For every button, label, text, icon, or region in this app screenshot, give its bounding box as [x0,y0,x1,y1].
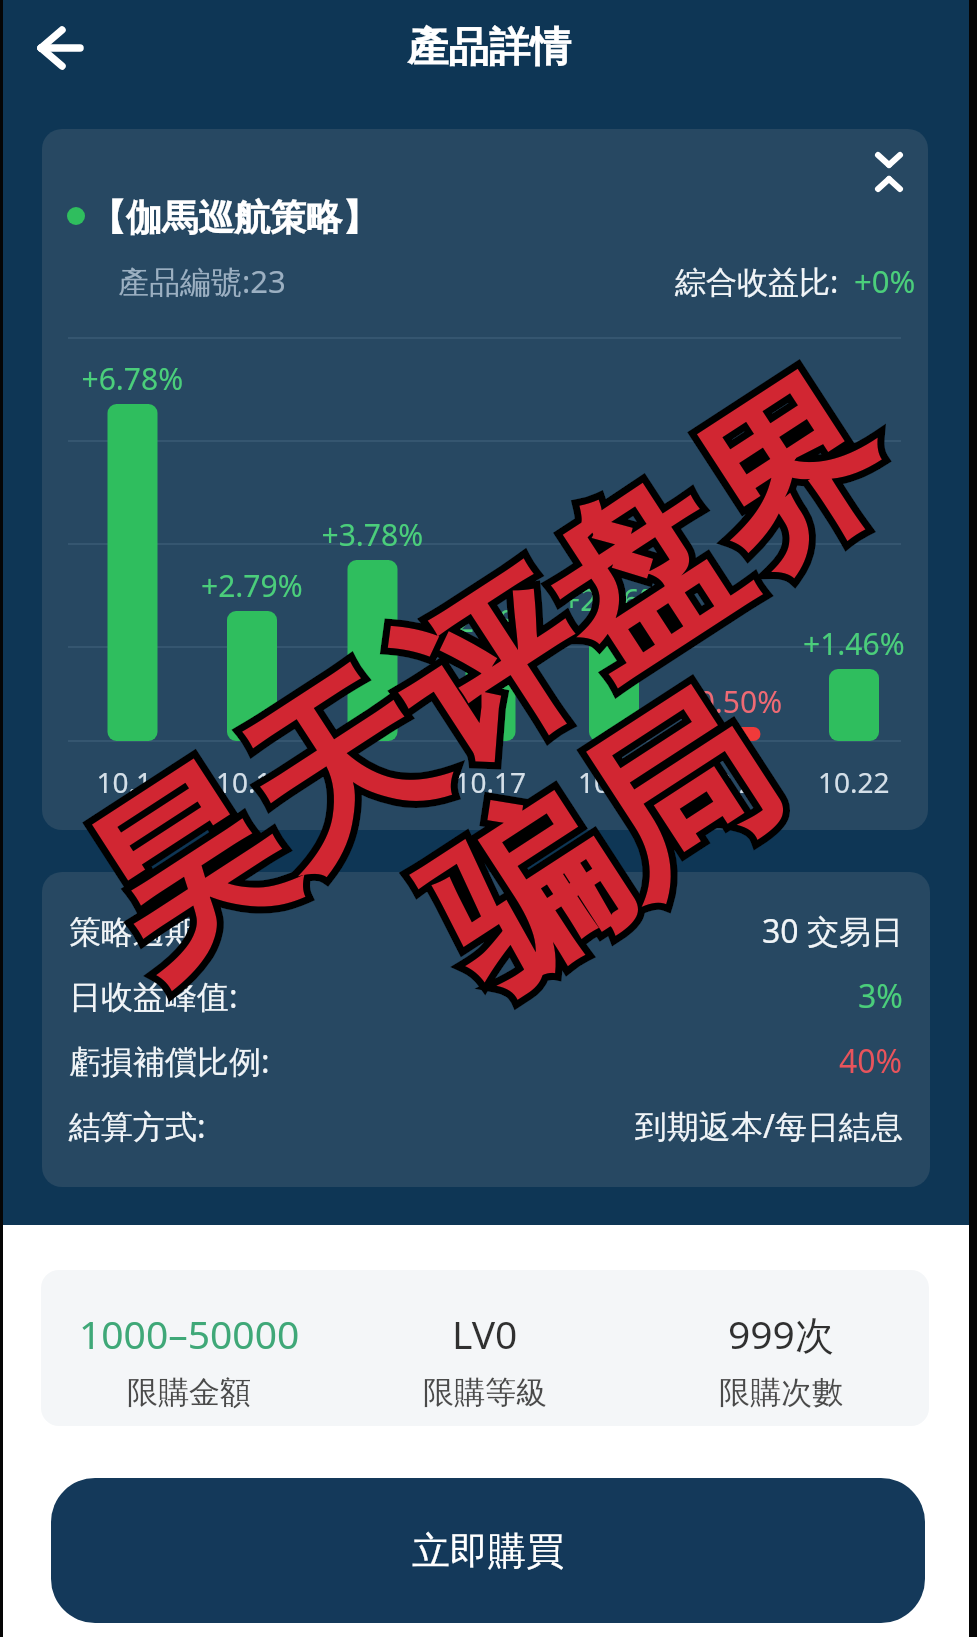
staticText: 產品詳情 [407,22,571,74]
staticText: 限購等級 [423,1373,547,1412]
staticText: LV0 [452,1307,518,1360]
staticText: 策略週期: [69,909,206,953]
staticText: 1000–50000 [79,1307,300,1360]
staticText: 限購次數 [719,1373,843,1412]
staticText: 限購金額 [127,1373,251,1412]
staticText: 產品編號:23 [118,260,286,302]
staticText: 結算方式: [69,1104,206,1148]
staticText: 30 交易日 [762,909,903,953]
staticText: 立即購買 [412,1527,564,1575]
staticText: 40% [839,1039,903,1083]
staticText: 日收益峰值: [69,974,238,1018]
button[interactable]: Collapse [853,131,915,193]
staticText: 綜合收益比: [675,260,839,302]
staticText: +0% [854,260,916,302]
staticText: 999次 [728,1307,834,1360]
button[interactable]: 立即購買 [51,1478,925,1623]
staticText: 【伽馬巡航策略】 [90,195,378,240]
staticText: 3% [858,974,903,1018]
staticText: 到期返本/每日結息 [635,1104,903,1148]
staticText: 虧損補償比例: [69,1039,270,1083]
button[interactable]: Back [10,12,86,88]
